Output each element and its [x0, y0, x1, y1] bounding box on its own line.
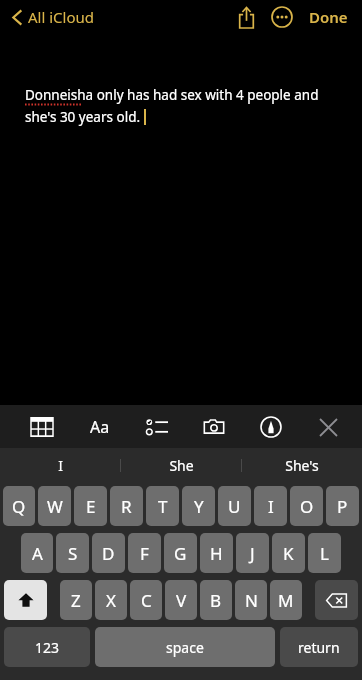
button[interactable]: Backspace — [315, 580, 358, 620]
button[interactable]: E — [74, 486, 107, 526]
staticText: Q — [12, 495, 26, 518]
button[interactable]: F — [128, 533, 161, 573]
staticText: I — [58, 456, 63, 475]
button[interactable]: B — [200, 580, 232, 620]
button[interactable]: P — [326, 486, 359, 526]
staticText: N — [245, 589, 258, 612]
staticText: E — [86, 495, 96, 518]
staticText: I — [268, 495, 274, 518]
button[interactable]: Z — [60, 580, 92, 620]
staticText: F — [140, 542, 149, 565]
button[interactable]: M — [270, 580, 302, 620]
button[interactable]: H — [200, 533, 233, 573]
staticText: T — [158, 495, 168, 518]
button[interactable]: Checklist — [137, 407, 177, 447]
staticText: She's — [285, 456, 319, 475]
staticText: O — [300, 495, 314, 518]
staticText: B — [210, 589, 222, 612]
button[interactable]: I — [254, 486, 287, 526]
staticText: P — [337, 495, 348, 518]
button[interactable]: I — [0, 448, 120, 483]
button[interactable]: Table — [22, 407, 62, 447]
button[interactable]: Text format — [80, 407, 120, 447]
button[interactable]: space — [95, 627, 275, 667]
button[interactable]: Markup — [251, 407, 291, 447]
staticText: U — [228, 495, 241, 518]
button[interactable]: Shift — [4, 580, 47, 620]
button[interactable]: 123 — [4, 627, 90, 667]
staticText: C — [141, 589, 152, 612]
button[interactable]: She — [121, 448, 241, 483]
button[interactable]: L — [308, 533, 341, 573]
button[interactable]: She's — [242, 448, 362, 483]
button[interactable]: U — [218, 486, 251, 526]
button[interactable]: G — [164, 533, 197, 573]
button[interactable]: W — [38, 486, 71, 526]
staticText: she's 30 years old. — [25, 108, 141, 126]
button[interactable]: C — [130, 580, 162, 620]
button[interactable]: A — [21, 533, 53, 573]
button[interactable]: O — [290, 486, 323, 526]
staticText: G — [174, 542, 187, 565]
button[interactable]: Q — [3, 486, 35, 526]
button[interactable]: R — [110, 486, 143, 526]
button[interactable]: More options — [265, 0, 299, 34]
staticText: Y — [194, 495, 204, 518]
button[interactable]: T — [146, 486, 179, 526]
button[interactable]: K — [272, 533, 305, 573]
staticText: 123 — [35, 638, 60, 657]
staticText: A — [32, 542, 43, 565]
staticText: K — [283, 542, 294, 565]
button[interactable]: V — [165, 580, 197, 620]
staticText: D — [102, 542, 115, 565]
button[interactable]: S — [56, 533, 89, 573]
staticText: All iCloud — [28, 7, 95, 27]
button[interactable]: All iCloud — [8, 3, 99, 31]
staticText: J — [250, 542, 255, 565]
staticText: Done — [309, 7, 348, 27]
button[interactable]: Close keyboard — [308, 407, 348, 447]
button[interactable]: N — [235, 580, 267, 620]
button[interactable]: D — [92, 533, 125, 573]
staticText: H — [210, 542, 223, 565]
staticText: Aa — [90, 416, 110, 438]
staticText: V — [176, 589, 187, 612]
staticText: space — [166, 638, 204, 657]
button[interactable]: Done — [303, 1, 354, 33]
button[interactable]: X — [95, 580, 127, 620]
staticText: X — [106, 589, 116, 612]
button[interactable]: Y — [182, 486, 215, 526]
staticText: S — [68, 542, 78, 565]
staticText: M — [278, 589, 294, 612]
staticText: She — [169, 456, 194, 475]
staticText: L — [320, 542, 329, 565]
staticText: W — [47, 495, 63, 518]
staticText: return — [298, 638, 340, 657]
button[interactable]: J — [236, 533, 269, 573]
button[interactable]: return — [280, 627, 358, 667]
staticText: R — [121, 495, 132, 518]
button[interactable]: Camera — [194, 407, 234, 447]
staticText: Z — [71, 589, 81, 612]
button[interactable]: Share — [229, 0, 263, 34]
staticText: Donneisha only has had sex with 4 people… — [25, 86, 319, 104]
